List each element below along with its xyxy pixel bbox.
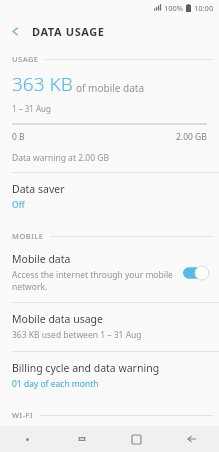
button[interactable]: Data saver (0, 173, 219, 221)
button[interactable]: Recents (54, 426, 109, 452)
button[interactable]: Home (109, 426, 164, 452)
staticText: USAGE (12, 54, 39, 64)
staticText: DATA USAGE (32, 24, 105, 39)
staticText: Mobile data usage (12, 312, 103, 326)
staticText: Data warning at 2.00 GB (12, 152, 109, 164)
staticText: 01 day of each month (12, 378, 99, 390)
button[interactable]: 363 KB (0, 69, 219, 172)
staticText: Billing cycle and data warning (12, 361, 160, 375)
staticText: 100% (164, 3, 184, 13)
staticText: 1 – 31 Aug (12, 103, 51, 114)
button[interactable]: Mobile data usage (0, 303, 219, 351)
button[interactable]: Billing cycle and data warning (0, 352, 219, 400)
button[interactable]: Mobile data (0, 246, 219, 302)
staticText: 2.00 GB (176, 131, 207, 143)
staticText: of mobile data (76, 81, 145, 95)
staticText: MOBILE (12, 231, 44, 241)
button[interactable]: Back (164, 426, 219, 452)
button[interactable]: Mobile data toggle (183, 266, 209, 280)
button[interactable]: Back (0, 16, 30, 46)
staticText: Access the internet through your mobile … (12, 269, 177, 293)
staticText: Off (12, 199, 25, 211)
staticText: Mobile data (12, 252, 71, 266)
staticText: 363 KB used between 1 – 31 Aug (12, 329, 142, 341)
button[interactable]: Menu dot (0, 426, 54, 452)
staticText: WI-FI (12, 410, 34, 420)
staticText: 363 KB (12, 71, 73, 97)
staticText: Data saver (12, 182, 65, 196)
staticText: 10:00 (194, 3, 214, 13)
staticText: 0 B (12, 131, 25, 143)
